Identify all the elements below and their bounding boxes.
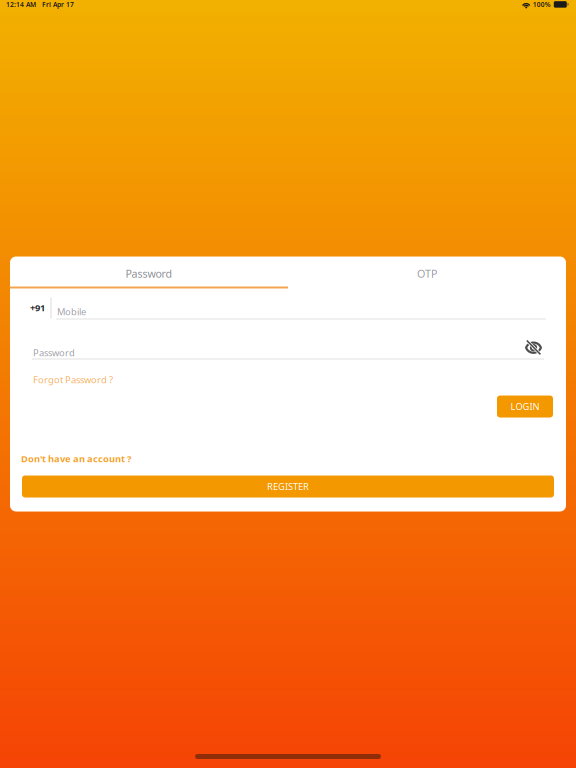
staticText: Forgot Password ? [33, 373, 113, 386]
button[interactable]: Show password [525, 340, 542, 354]
staticText: Password [125, 266, 172, 281]
staticText: +91 [30, 301, 45, 314]
staticText: LOGIN [510, 400, 539, 413]
staticText: REGISTER [267, 480, 309, 493]
staticText: Mobile [57, 305, 86, 318]
button[interactable]: Password [10, 256, 288, 290]
staticText: 12:14 AM Fri Apr 17 [6, 0, 74, 9]
staticText: Don't have an account ? [21, 452, 131, 465]
button[interactable]: OTP [288, 256, 566, 290]
staticText: OTP [417, 266, 437, 281]
button[interactable]: Forgot Password ? [33, 373, 113, 386]
button[interactable]: REGISTER [22, 475, 554, 497]
button[interactable]: LOGIN [497, 395, 553, 417]
staticText: Password [33, 346, 75, 359]
staticText: 100% [533, 0, 551, 9]
